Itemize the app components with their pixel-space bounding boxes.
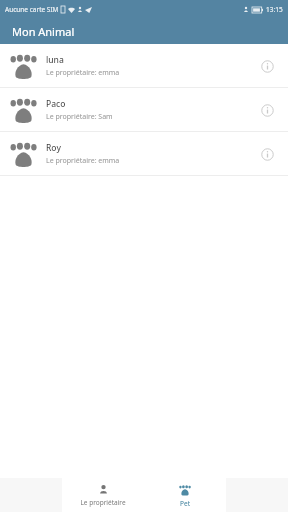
button[interactable]: Pet — [144, 478, 226, 512]
staticText: Aucune carte SIM — [5, 5, 59, 14]
staticText: 13:15 — [266, 5, 283, 14]
staticText: Le propriétaire: emma — [46, 156, 120, 166]
staticText: Le propriétaire: Sam — [46, 112, 113, 122]
staticText: Roy — [46, 142, 61, 154]
staticText: Le propriétaire: emma — [46, 68, 120, 78]
button[interactable]: Informations sur Roy — [256, 143, 278, 165]
staticText: Le propriétaire — [80, 498, 126, 507]
button[interactable]: Informations sur Paco — [256, 99, 278, 121]
button[interactable]: Roy — [0, 132, 288, 175]
staticText: luna — [46, 54, 64, 66]
staticText: Paco — [46, 98, 66, 110]
button[interactable]: Le propriétaire — [62, 478, 144, 512]
staticText: Pet — [180, 499, 190, 508]
staticText: Mon Animal — [12, 24, 75, 39]
button[interactable]: Paco — [0, 88, 288, 131]
button[interactable]: Informations sur luna — [256, 55, 278, 77]
button[interactable]: luna — [0, 44, 288, 87]
